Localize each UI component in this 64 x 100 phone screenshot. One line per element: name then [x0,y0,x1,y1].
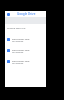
button[interactable]: Document title [5,45,46,56]
button[interactable]: Menu [7,13,10,16]
staticText: Google Drive [17,12,36,16]
staticText: Document title [12,59,30,62]
staticText: you opened [12,51,24,54]
staticText: Shared with me [7,26,26,29]
staticText: Document title [12,37,30,40]
staticText: you opened [12,40,24,43]
staticText: you opened [12,62,24,65]
button[interactable]: Document title [5,56,46,67]
button[interactable]: Document title [5,34,46,45]
staticText: Document title [12,48,30,51]
